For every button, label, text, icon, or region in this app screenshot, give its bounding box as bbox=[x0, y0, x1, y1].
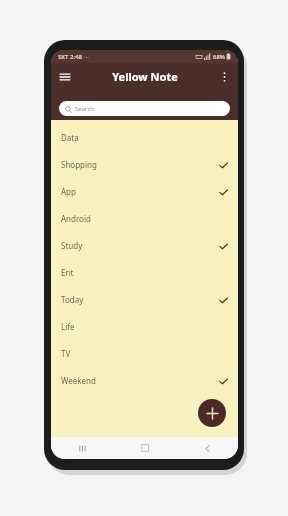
staticText: 68% bbox=[213, 53, 225, 61]
staticText: TV bbox=[61, 348, 71, 359]
staticText: Weekend bbox=[61, 375, 96, 386]
button[interactable]: TV bbox=[51, 340, 238, 367]
button[interactable]: Recent apps bbox=[51, 437, 114, 459]
staticText: Study bbox=[61, 240, 83, 251]
staticText: ··· bbox=[84, 53, 89, 61]
button[interactable]: App bbox=[51, 178, 238, 205]
button[interactable]: Data bbox=[51, 124, 238, 151]
button[interactable]: Home bbox=[114, 437, 176, 459]
staticText: Yellow Note bbox=[112, 69, 178, 84]
button[interactable]: Search bbox=[59, 101, 230, 116]
staticText: Data bbox=[61, 132, 79, 143]
button[interactable]: Life bbox=[51, 313, 238, 340]
staticText: Ent bbox=[61, 267, 74, 278]
staticText: App bbox=[61, 186, 76, 197]
button[interactable]: More options bbox=[214, 67, 234, 87]
button[interactable]: Shopping bbox=[51, 151, 238, 178]
staticText: Shopping bbox=[61, 159, 97, 170]
staticText: Life bbox=[61, 321, 75, 332]
button[interactable]: Menu bbox=[55, 67, 75, 87]
button[interactable]: Back bbox=[176, 437, 238, 459]
button[interactable]: Study bbox=[51, 232, 238, 259]
staticText: Search bbox=[75, 105, 94, 113]
button[interactable]: Ent bbox=[51, 259, 238, 286]
button[interactable]: Today bbox=[51, 286, 238, 313]
staticText: Android bbox=[61, 213, 91, 224]
button[interactable]: Add note bbox=[198, 399, 226, 427]
button[interactable]: Weekend bbox=[51, 367, 238, 394]
button[interactable]: Android bbox=[51, 205, 238, 232]
staticText: SKT 2:48 bbox=[58, 53, 82, 61]
staticText: Today bbox=[61, 294, 84, 305]
